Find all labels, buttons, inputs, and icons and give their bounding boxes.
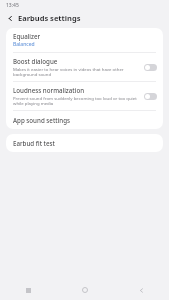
button[interactable]: App sound settings [6,111,163,129]
staticText: App sound settings [13,116,71,124]
button[interactable]: Loudness normalization [6,82,163,110]
button[interactable]: Back [4,12,16,24]
staticText: Equalizer [13,32,41,40]
staticText: Makes it easier to hear voices in videos… [13,66,140,77]
button[interactable]: Equalizer [6,28,163,52]
button[interactable]: Earbud fit test [6,134,163,152]
staticText: Prevent sound from suddenly becoming too… [13,95,140,106]
button[interactable]: Boost dialogue [6,53,163,81]
staticText: Boost dialogue [13,57,58,65]
button[interactable]: Boost dialogue toggle [144,64,157,71]
staticText: Loudness normalization [13,86,85,94]
staticText: 13:45 [6,2,19,9]
button[interactable]: Recent apps [0,280,57,300]
staticText: Earbud fit test [13,139,55,147]
button[interactable]: Home [57,280,113,300]
staticText: Earbuds settings [18,13,81,23]
button[interactable]: Loudness normalization toggle [144,93,157,100]
staticText: Balanced [13,41,35,48]
